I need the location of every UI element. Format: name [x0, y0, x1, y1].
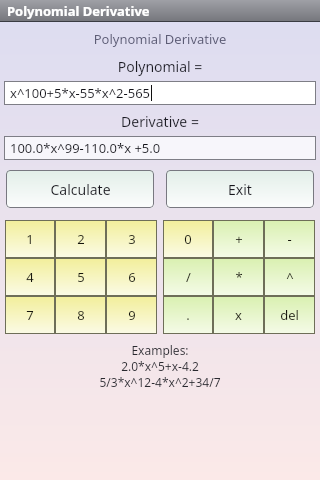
button[interactable]: - — [264, 220, 315, 258]
button[interactable]: * — [213, 258, 264, 296]
staticText: / — [186, 268, 191, 286]
button[interactable]: 100.0*x^99-110.0*x +5.0 — [4, 136, 316, 160]
staticText: 100.0*x^99-110.0*x +5.0 — [10, 139, 161, 157]
button[interactable]: del — [264, 296, 315, 334]
button[interactable]: x^100+5*x-55*x^2-565 — [4, 81, 316, 105]
staticText: 4 — [26, 268, 34, 286]
staticText: 7 — [26, 306, 34, 324]
staticText: Exit — [228, 180, 252, 199]
button[interactable]: 2 — [55, 220, 106, 258]
staticText: 3 — [128, 230, 136, 248]
staticText: x^100+5*x-55*x^2-565 — [10, 84, 150, 102]
staticText: Polynomial Derivative — [7, 2, 150, 20]
button[interactable]: + — [213, 220, 264, 258]
staticText: - — [287, 230, 292, 248]
staticText: 1 — [26, 230, 34, 248]
staticText: Polynomial Derivative — [0, 30, 320, 48]
button[interactable]: Exit — [166, 170, 314, 208]
staticText: 0 — [184, 230, 192, 248]
button[interactable]: 3 — [106, 220, 157, 258]
staticText: 5 — [77, 268, 85, 286]
staticText: Derivative = — [0, 112, 320, 131]
staticText: 2.0*x^5+x-4.2 — [121, 358, 199, 374]
staticText: 6 — [128, 268, 136, 286]
button[interactable]: 1 — [5, 220, 55, 258]
button[interactable]: 8 — [55, 296, 106, 334]
button[interactable]: 7 — [5, 296, 55, 334]
button[interactable]: Calculate — [6, 170, 154, 208]
button[interactable]: 5 — [55, 258, 106, 296]
staticText: + — [235, 230, 243, 248]
staticText: Polynomial = — [0, 57, 320, 76]
staticText: Examples: — [131, 342, 189, 358]
button[interactable]: 9 — [106, 296, 157, 334]
staticText: 8 — [77, 306, 85, 324]
staticText: 2 — [77, 230, 85, 248]
button[interactable]: 4 — [5, 258, 55, 296]
staticText: Calculate — [50, 180, 111, 199]
button[interactable]: ^ — [264, 258, 315, 296]
button[interactable]: / — [163, 258, 213, 296]
button[interactable]: 6 — [106, 258, 157, 296]
button[interactable]: . — [163, 296, 213, 334]
button[interactable]: 0 — [163, 220, 213, 258]
staticText: del — [280, 306, 299, 324]
staticText: . — [186, 306, 190, 324]
staticText: 9 — [128, 306, 136, 324]
staticText: 5/3*x^12-4*x^2+34/7 — [99, 374, 221, 390]
staticText: * — [235, 268, 243, 286]
staticText: x — [235, 306, 242, 324]
button[interactable]: x — [213, 296, 264, 334]
staticText: ^ — [286, 268, 294, 286]
